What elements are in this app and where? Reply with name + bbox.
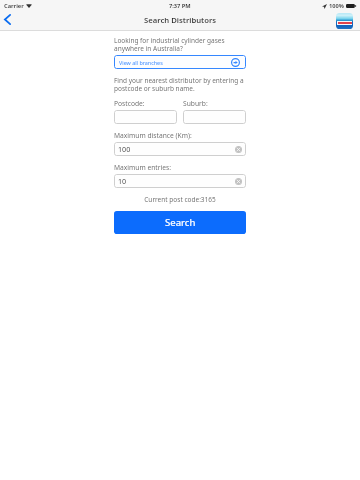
button[interactable] bbox=[114, 110, 177, 124]
staticText: Suburb: bbox=[183, 99, 246, 108]
staticText: 100% bbox=[329, 2, 344, 10]
staticText: Search bbox=[165, 216, 196, 229]
staticText: 10 bbox=[118, 176, 127, 186]
staticText: View all branches bbox=[119, 59, 163, 66]
staticText: Carrier bbox=[4, 2, 24, 10]
staticText: 100 bbox=[118, 144, 131, 154]
button[interactable]: Back bbox=[0, 11, 20, 30]
button[interactable]: View all branches bbox=[114, 55, 246, 69]
staticText: Current post code:3165 bbox=[114, 195, 246, 204]
button[interactable] bbox=[183, 110, 246, 124]
staticText: Maximum entries: bbox=[114, 163, 172, 172]
button[interactable]: 10 bbox=[114, 174, 246, 188]
staticText: 7:37 PM bbox=[169, 2, 191, 10]
staticText: Postcode: bbox=[114, 99, 177, 108]
staticText: Looking for industrial cylinder gases an… bbox=[114, 36, 225, 53]
staticText: Maximum distance (Km): bbox=[114, 131, 192, 140]
button[interactable]: Supagas app icon bbox=[336, 13, 353, 29]
staticText: Find your nearest distributor by enterin… bbox=[114, 76, 244, 93]
button[interactable]: Search bbox=[114, 211, 246, 234]
button[interactable]: 100 bbox=[114, 142, 246, 156]
staticText: Search Distributors bbox=[144, 15, 217, 25]
